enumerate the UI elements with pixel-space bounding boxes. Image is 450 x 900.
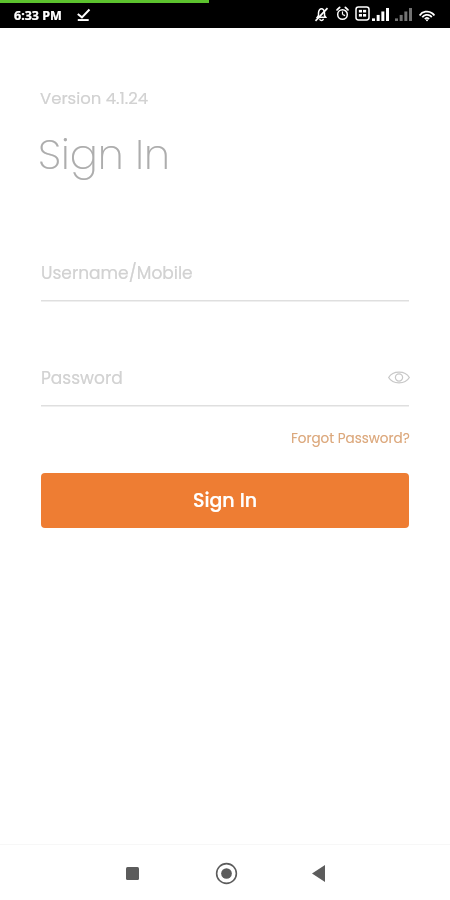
button[interactable]: Show password — [384, 362, 414, 392]
staticText: Sign In — [193, 487, 257, 514]
staticText: Version 4.1.24 — [40, 87, 149, 110]
button[interactable]: Sign In — [41, 473, 409, 528]
staticText: Forgot Password? — [291, 429, 410, 448]
button[interactable]: Forgot Password? — [286, 425, 410, 451]
staticText: Password — [41, 366, 123, 390]
button[interactable]: Username/Mobile — [41, 261, 409, 302]
button[interactable]: Password — [41, 366, 409, 407]
staticText: 6:33 PM — [14, 7, 62, 24]
button[interactable]: Home — [202, 849, 250, 897]
button[interactable]: Back — [294, 849, 342, 897]
staticText: Username/Mobile — [41, 261, 193, 285]
staticText: Sign In — [38, 125, 170, 183]
button[interactable]: Recent apps — [108, 849, 156, 897]
